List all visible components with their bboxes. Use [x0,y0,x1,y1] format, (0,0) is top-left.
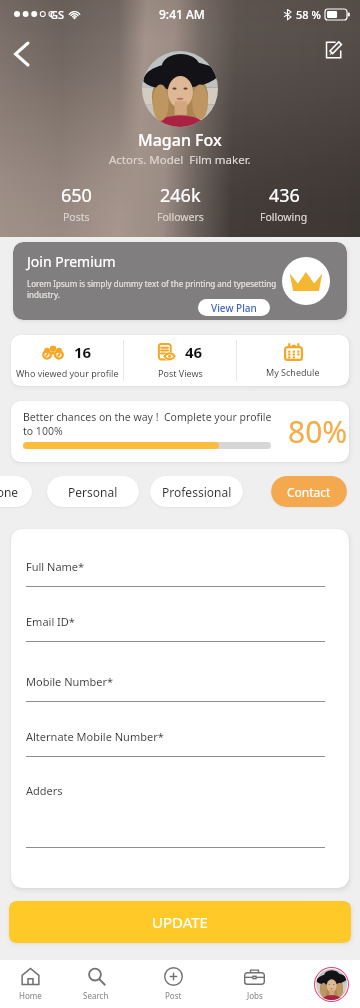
staticText: 650 [61,183,92,208]
staticText: Mobile Number* [26,674,114,689]
button[interactable]: 650 [24,183,128,224]
staticText: UPDATE [152,912,208,932]
staticText: Full Name* [26,559,85,574]
staticText: 80% [288,411,348,452]
button[interactable]: Phone [0,476,32,507]
staticText: 46 [185,342,203,362]
staticText: Jobs [247,990,263,1001]
button[interactable]: Better chances on the way ! Complete you… [11,401,349,462]
button[interactable]: 436 [232,183,336,224]
staticText: Who viewed your profile [16,367,119,379]
staticText: 9:41 AM [159,6,205,22]
button[interactable]: 246k [128,183,232,224]
staticText: Better chances on the way ! Complete you… [23,410,275,438]
button[interactable]: Mobile Number* [26,674,325,702]
staticText: Join Premium [27,252,116,271]
staticText: Contact [287,484,331,500]
staticText: Magan Fox [138,129,222,151]
button[interactable]: Home [2,960,58,1008]
staticText: Actors. Model Film maker. [109,152,251,168]
staticText: Alternate Mobile Number* [26,729,164,744]
staticText: View Plan [211,301,257,315]
staticText: Home [19,990,42,1001]
staticText: Following [260,210,308,224]
button[interactable]: Full Name* [26,559,325,587]
button[interactable]: Profile photo [142,51,218,127]
staticText: Post [165,990,182,1001]
button[interactable]: Search [68,960,124,1008]
staticText: My Schedule [266,366,320,378]
staticText: Posts [63,210,90,224]
staticText: Followers [157,210,204,224]
button[interactable]: Alternate Mobile Number* [26,729,325,757]
staticText: 436 [269,183,300,208]
button[interactable]: Edit [316,33,350,67]
staticText: 246k [160,183,201,208]
button[interactable]: My Schedule [237,335,349,386]
staticText: GS [50,7,65,22]
button[interactable]: Profile [309,960,353,1008]
staticText: Post Views [158,367,203,379]
button[interactable]: Join Premium [13,242,347,320]
button[interactable]: Post [145,960,201,1008]
staticText: Email ID* [26,614,75,629]
button[interactable]: 46 [124,335,236,386]
staticText: Professional [162,484,232,500]
button[interactable]: Contact [271,476,347,507]
staticText: Personal [68,484,118,500]
button[interactable]: 16 [11,335,123,386]
button[interactable]: Adders [26,783,325,848]
button[interactable]: UPDATE [9,901,351,943]
staticText: Phone [0,484,19,500]
staticText: Lorem Ipsum is simply dummy text of the … [27,278,277,301]
button[interactable]: View Plan [198,299,270,316]
staticText: Adders [26,783,63,798]
staticText: 16 [74,342,92,362]
button[interactable]: Jobs [226,960,282,1008]
staticText: 58 % [296,7,321,22]
button[interactable]: Back [4,37,38,71]
button[interactable]: Email ID* [26,614,325,642]
staticText: Search [83,990,109,1001]
button[interactable]: Professional [150,476,243,507]
button[interactable]: Personal [47,476,139,507]
